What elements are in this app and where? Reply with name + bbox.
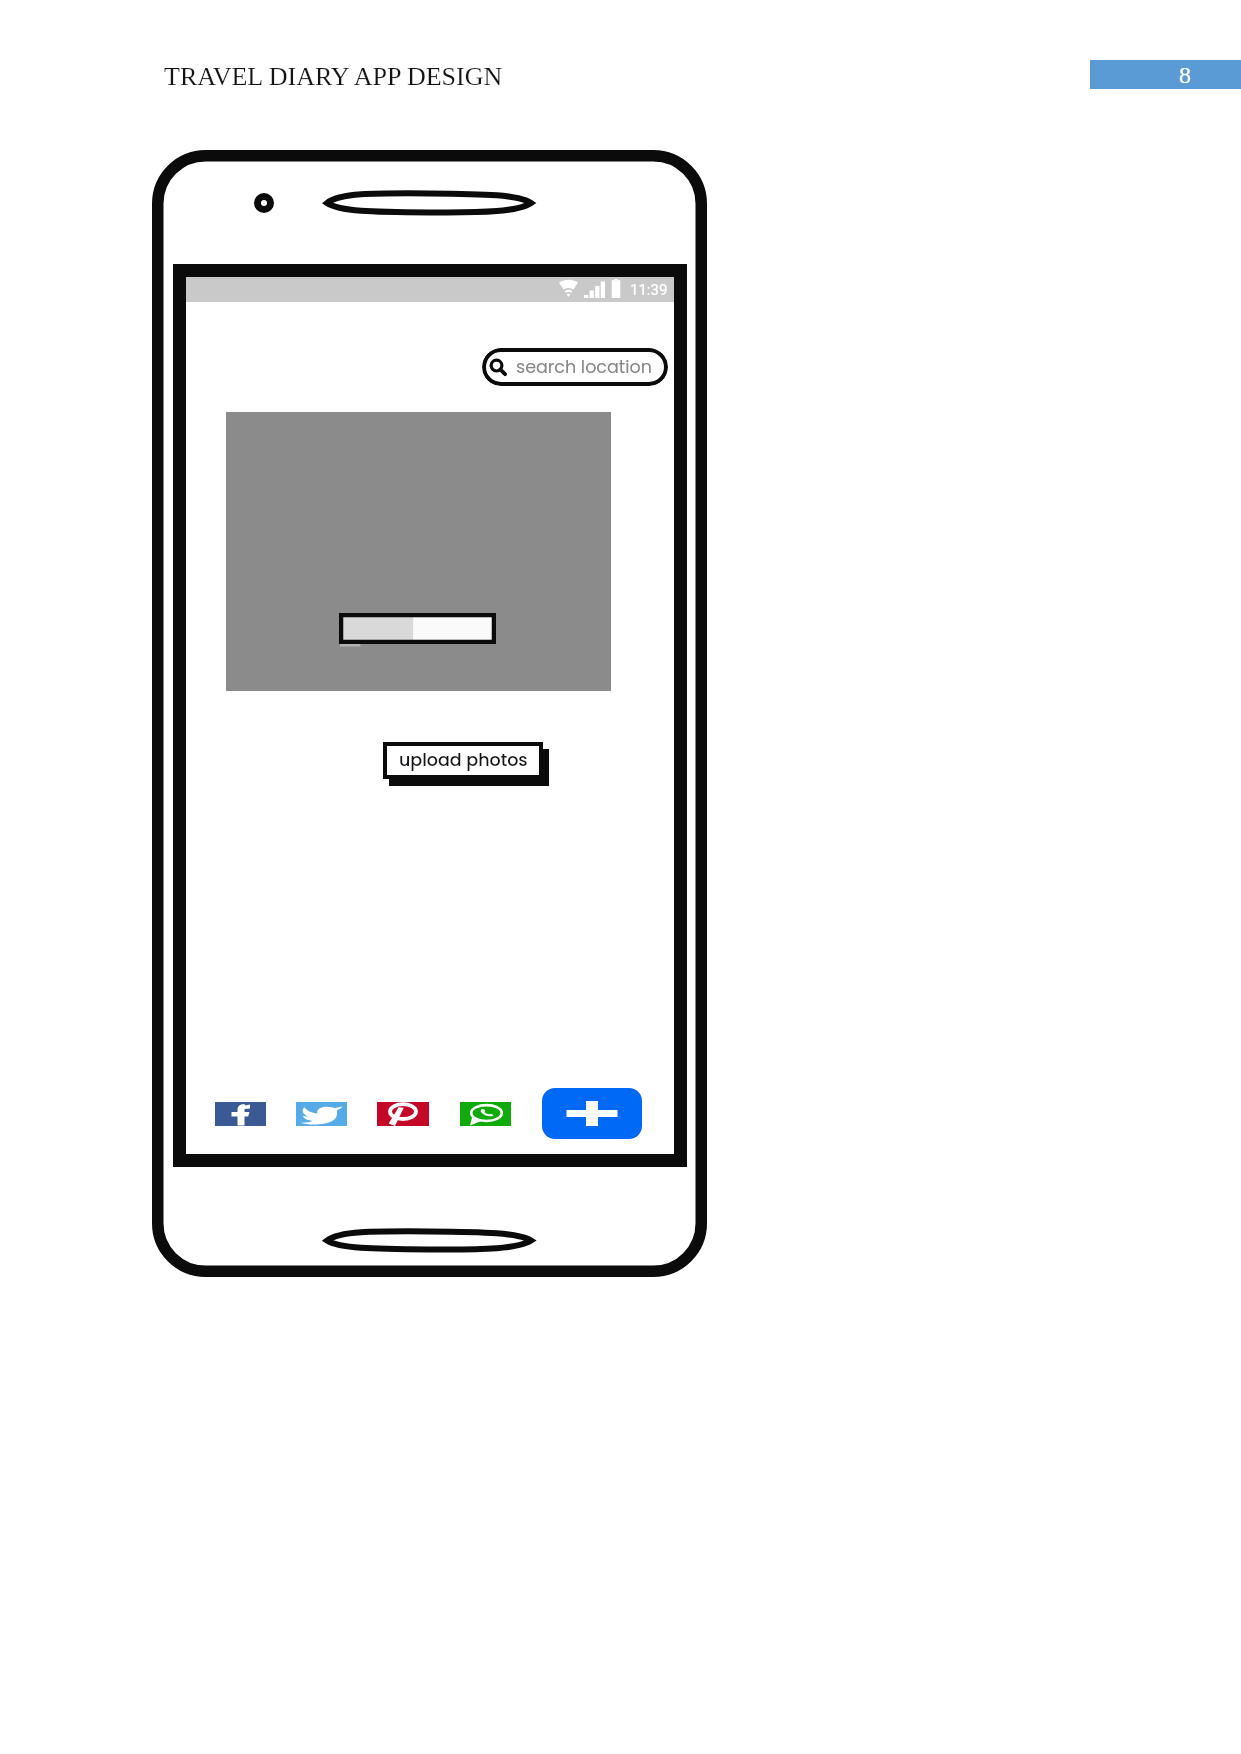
staticText: upload photos <box>399 748 528 773</box>
button[interactable]: Add new entry <box>542 1088 642 1139</box>
staticText: 11:39 <box>630 281 668 299</box>
button[interactable]: Share on WhatsApp <box>460 1102 511 1126</box>
button[interactable]: Share on Facebook <box>215 1102 266 1126</box>
staticText: TRAVEL DIARY APP DESIGN <box>164 62 503 91</box>
button[interactable]: Share on Twitter <box>296 1102 347 1126</box>
button[interactable]: search location <box>482 348 668 386</box>
staticText: search location <box>516 355 652 380</box>
button[interactable]: Share on Pinterest <box>377 1102 429 1126</box>
staticText: 8 <box>1179 62 1191 89</box>
button[interactable]: Photo preview <box>226 412 611 691</box>
button[interactable]: upload photos <box>383 742 543 779</box>
